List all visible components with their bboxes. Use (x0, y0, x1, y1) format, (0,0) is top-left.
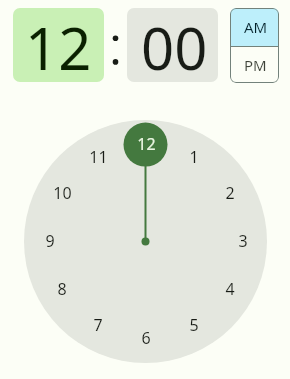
staticText: 9 (45, 230, 55, 252)
staticText: 1 (189, 146, 199, 168)
staticText: 12 (137, 133, 156, 155)
button[interactable]: 6 (132, 327, 160, 349)
other: Clock dial (24, 120, 267, 363)
button[interactable]: 2 (216, 182, 244, 204)
button[interactable]: 10 (48, 182, 76, 204)
staticText: 6 (141, 327, 151, 349)
staticText: 4 (225, 278, 235, 300)
button[interactable]: 8 (48, 278, 76, 300)
button[interactable]: 12 (132, 133, 160, 155)
button[interactable]: 7 (84, 314, 112, 336)
button[interactable]: AM (230, 8, 279, 46)
staticText: 5 (189, 314, 199, 336)
button[interactable]: 3 (229, 230, 257, 252)
staticText: 3 (238, 230, 248, 252)
button[interactable]: 9 (36, 230, 64, 252)
button[interactable]: 1 (180, 146, 208, 168)
staticText: AM (244, 17, 268, 37)
staticText: 00 (141, 8, 208, 82)
staticText: 11 (89, 146, 108, 168)
staticText: PM (244, 55, 267, 75)
button[interactable]: Minute, 00 (127, 8, 218, 82)
button[interactable]: 4 (216, 278, 244, 300)
button[interactable]: 5 (180, 314, 208, 336)
button[interactable]: Hour, 12 (13, 8, 104, 82)
button[interactable]: 11 (84, 146, 112, 168)
button[interactable]: PM (230, 47, 279, 83)
staticText: 8 (57, 278, 67, 300)
staticText: 10 (53, 182, 72, 204)
staticText: 7 (93, 314, 103, 336)
staticText: 12 (25, 8, 92, 82)
staticText: 2 (225, 182, 235, 204)
